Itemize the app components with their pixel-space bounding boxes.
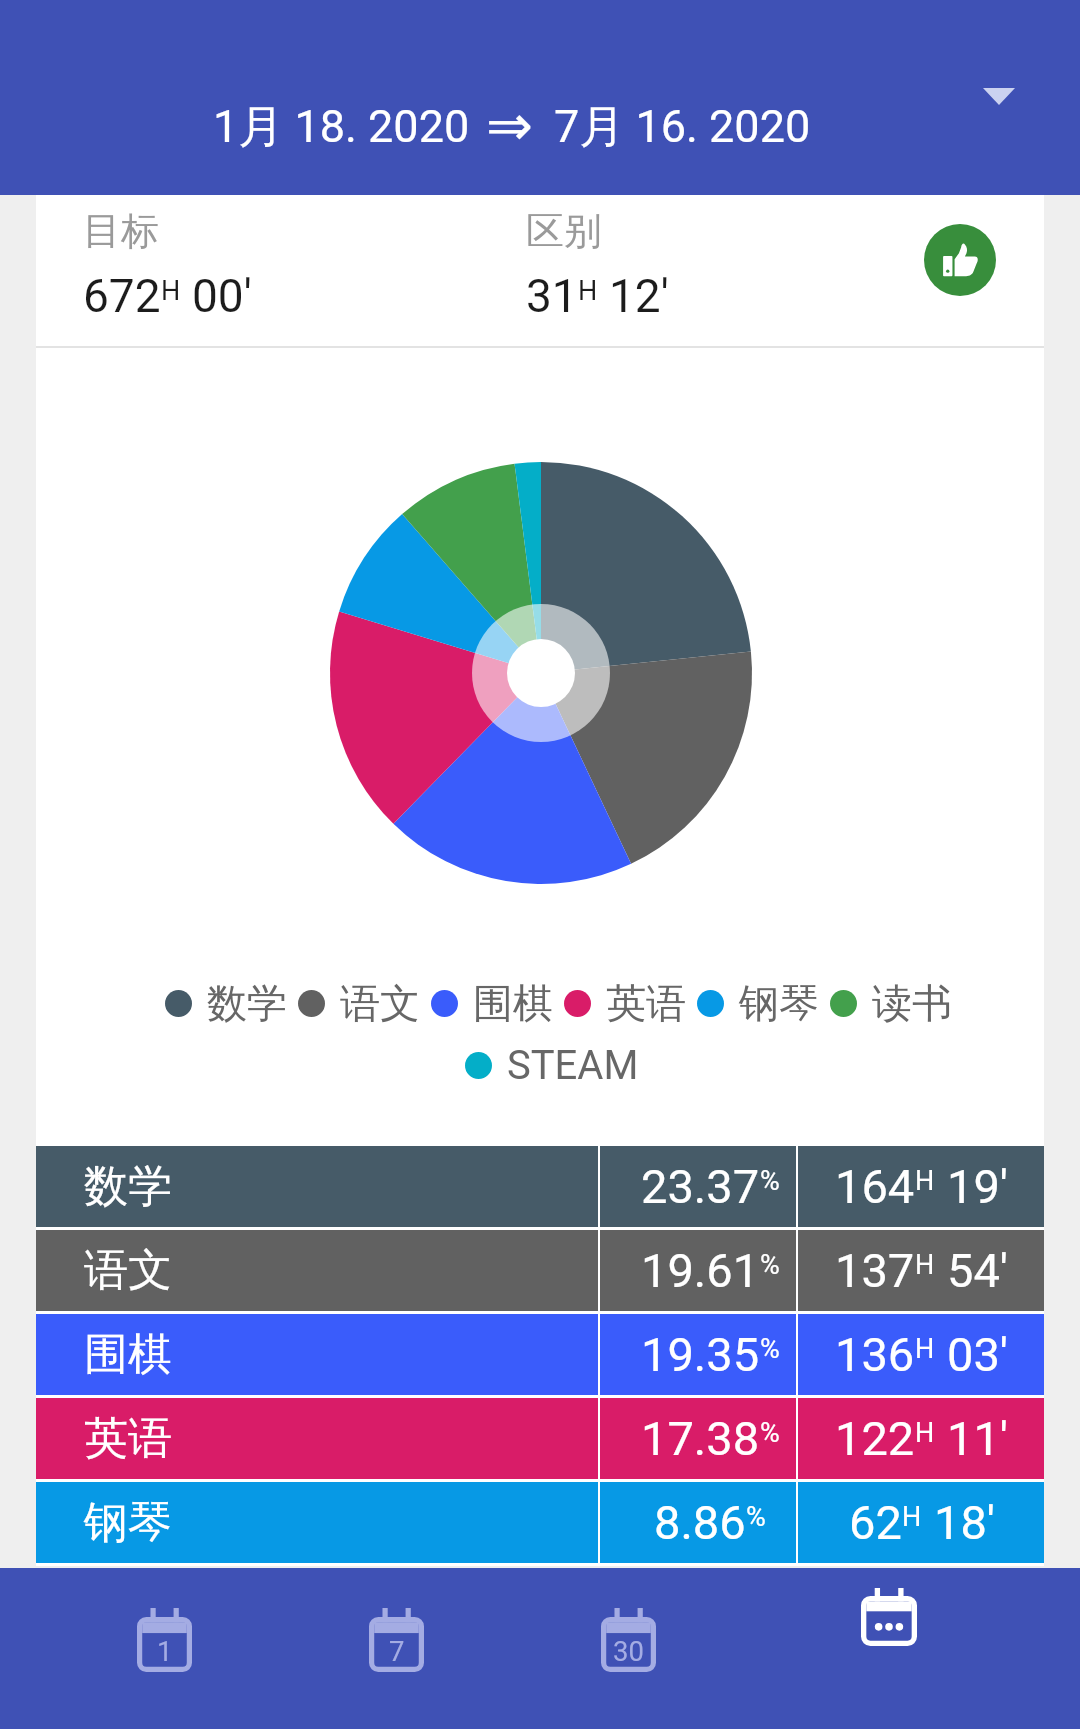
staticText: % — [760, 1165, 780, 1197]
staticText: 164 — [835, 1159, 915, 1214]
staticText: H — [915, 1417, 935, 1449]
staticText: 19' — [947, 1159, 1009, 1214]
staticText: 钢琴 — [84, 1495, 172, 1550]
staticText: 12' — [609, 269, 669, 323]
staticText: 03' — [947, 1327, 1009, 1382]
staticText: 7月 16. 2020 — [554, 99, 811, 156]
staticText: 英语 — [606, 978, 686, 1028]
staticText: 672 — [83, 269, 161, 323]
staticText: % — [746, 1501, 766, 1533]
staticText: 23.37 — [641, 1159, 760, 1214]
staticText: 19.35 — [641, 1327, 760, 1382]
staticText: 1 — [157, 1635, 173, 1667]
staticText: STEAM — [507, 1042, 639, 1089]
staticText: ⇒ — [486, 93, 533, 158]
button[interactable]: Range 1 days — [104, 1580, 224, 1700]
staticText: 1月 18. 2020 — [213, 99, 470, 156]
staticText: H — [915, 1165, 935, 1197]
staticText: 读书 — [872, 978, 952, 1028]
button[interactable]: Choose date range — [951, 56, 1047, 152]
staticText: 8.86 — [654, 1495, 746, 1550]
staticText: 7 — [389, 1635, 405, 1667]
staticText: 英语 — [84, 1411, 172, 1466]
staticText: 11' — [947, 1411, 1009, 1466]
staticText: 31 — [526, 269, 578, 323]
staticText: 17.38 — [641, 1411, 760, 1466]
button[interactable]: Range 7 days — [336, 1580, 456, 1700]
staticText: 54' — [947, 1243, 1009, 1298]
staticText: 数学 — [84, 1159, 172, 1214]
staticText: 语文 — [84, 1243, 172, 1298]
button[interactable]: 数学 — [36, 1146, 1044, 1227]
button[interactable]: Range 30 days — [568, 1580, 688, 1700]
staticText: 18' — [934, 1495, 996, 1550]
button[interactable]: Range … days — [829, 1557, 949, 1677]
staticText: 30 — [613, 1635, 644, 1667]
staticText: H — [915, 1249, 935, 1281]
staticText: H — [902, 1501, 922, 1533]
button[interactable]: 围棋 — [36, 1314, 1044, 1395]
staticText: H — [578, 275, 598, 307]
button[interactable]: 英语 — [36, 1398, 1044, 1479]
staticText: 围棋 — [84, 1327, 172, 1382]
staticText: % — [760, 1249, 780, 1281]
staticText: 区别 — [526, 207, 602, 255]
staticText: 136 — [835, 1327, 915, 1382]
staticText: 00' — [192, 269, 252, 323]
staticText: % — [760, 1417, 780, 1449]
staticText: 围棋 — [473, 978, 553, 1028]
button[interactable]: 语文 — [36, 1230, 1044, 1311]
staticText: % — [760, 1333, 780, 1365]
staticText: 137 — [835, 1243, 915, 1298]
staticText: 数学 — [207, 978, 287, 1028]
staticText: H — [161, 275, 181, 307]
staticText: 62 — [849, 1495, 902, 1550]
staticText: 钢琴 — [739, 978, 819, 1028]
staticText: 语文 — [340, 978, 420, 1028]
staticText: 19.61 — [641, 1243, 760, 1298]
button[interactable]: 钢琴 — [36, 1482, 1044, 1563]
staticText: 122 — [835, 1411, 915, 1466]
staticText: H — [915, 1333, 935, 1365]
button[interactable]: Goal reached — [924, 224, 996, 296]
staticText: 目标 — [83, 207, 159, 255]
